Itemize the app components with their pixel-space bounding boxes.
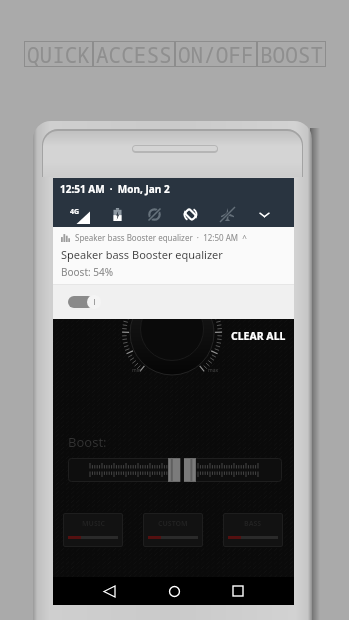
button[interactable]: Boost slider (168, 458, 196, 482)
button[interactable]: Home (161, 578, 187, 604)
staticText: ACCESS (96, 41, 172, 67)
staticText: BASS (244, 519, 262, 529)
button[interactable]: MUSIC (63, 513, 123, 547)
staticText: Boost: 54% (61, 265, 114, 279)
staticText: max (208, 367, 219, 374)
staticText: QUICK (27, 41, 90, 67)
button[interactable]: Recent apps (225, 578, 251, 604)
button[interactable]: Expand quick settings (254, 204, 274, 224)
button[interactable]: Do not disturb (144, 204, 164, 224)
staticText: CLEAR ALL (231, 329, 286, 343)
staticText: min (132, 367, 142, 374)
button[interactable]: Mobile data (70, 204, 90, 224)
button[interactable]: Airplane mode (217, 204, 237, 224)
staticText: CUSTOM (158, 519, 188, 529)
button[interactable]: Battery saver (107, 204, 127, 224)
staticText: Boost: (68, 433, 107, 451)
staticText: 12:51 AM · Mon, Jan 2 (60, 182, 170, 196)
button[interactable]: Auto rotate (180, 204, 200, 224)
staticText: ON/OFF (178, 41, 254, 67)
staticText: BOOST (260, 41, 323, 67)
button[interactable]: Back (96, 578, 122, 604)
button[interactable]: CLEAR ALL (231, 329, 286, 343)
button[interactable]: Toggle boost (68, 295, 101, 309)
staticText: MUSIC (82, 519, 105, 529)
button[interactable]: CUSTOM (143, 513, 203, 547)
staticText: Speaker bass Booster equalizer · 12:50 A… (75, 232, 247, 243)
staticText: 4G (70, 207, 80, 217)
staticText: Speaker bass Booster equalizer (61, 247, 223, 262)
button[interactable]: BASS (223, 513, 283, 547)
